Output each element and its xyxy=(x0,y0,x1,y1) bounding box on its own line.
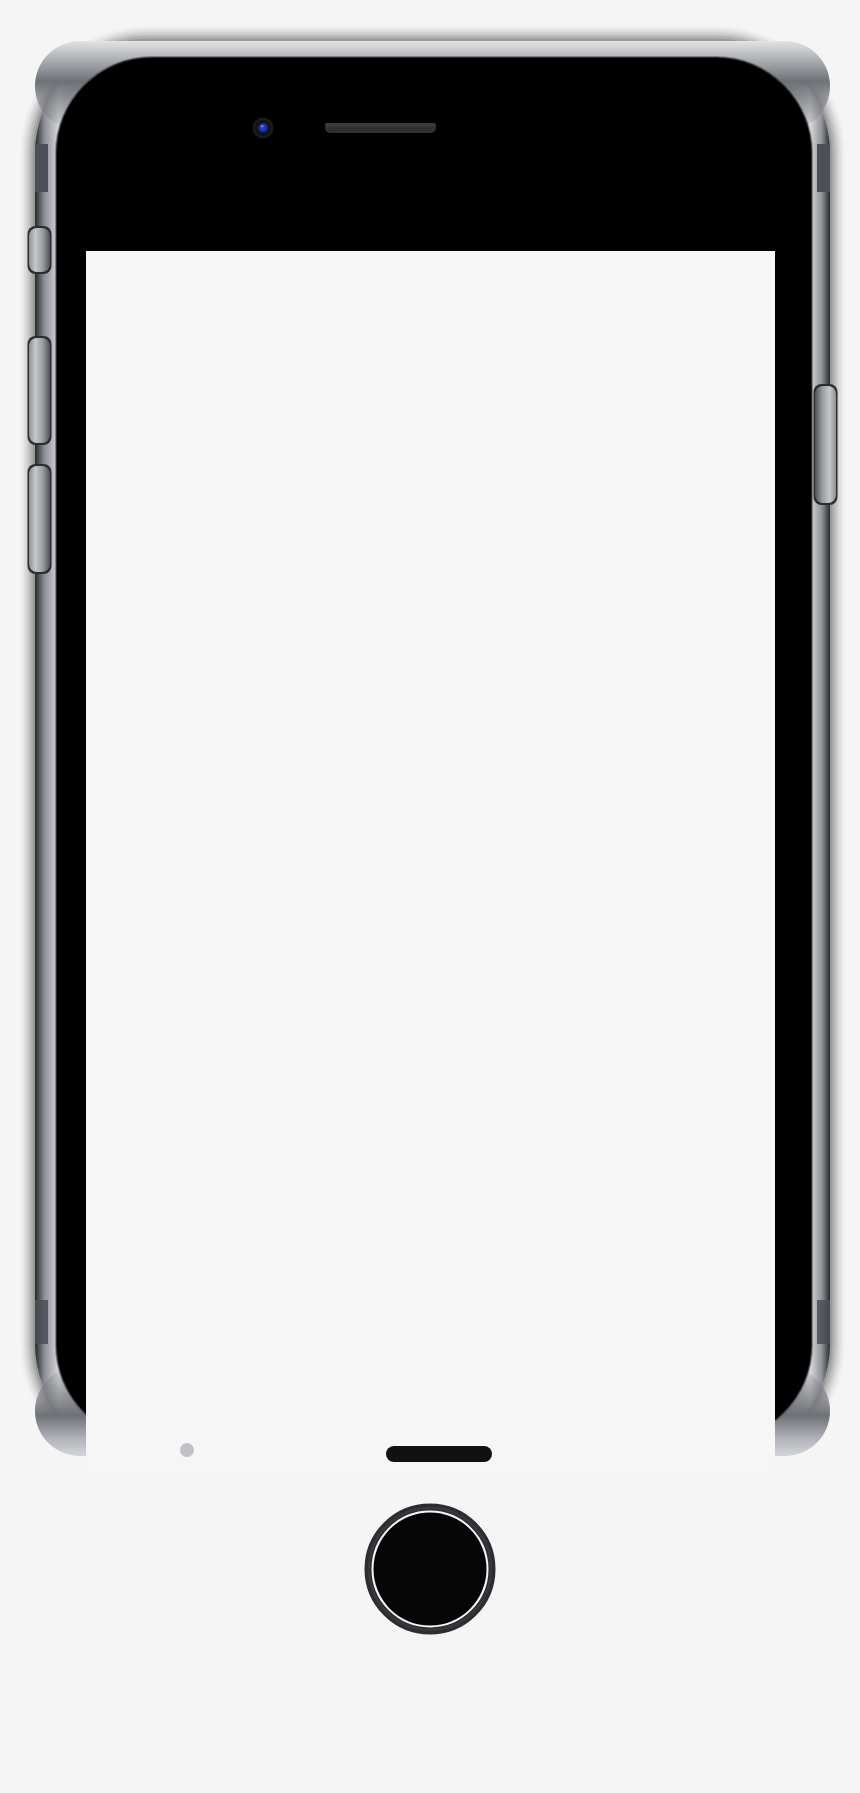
button[interactable]: Phone screen xyxy=(0,0,860,1793)
